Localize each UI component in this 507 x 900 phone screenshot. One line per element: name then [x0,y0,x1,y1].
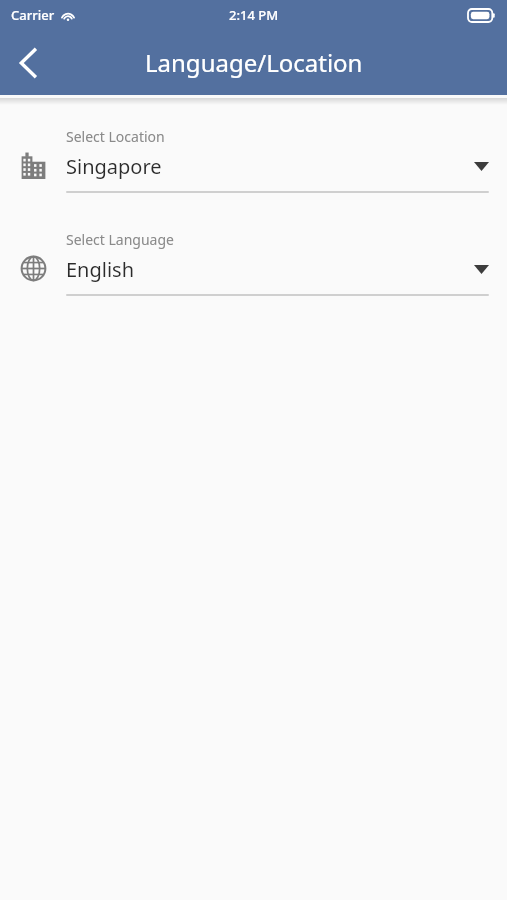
button[interactable]: Language [0,230,507,296]
staticText: Select Language [66,230,174,249]
staticText: Language/Location [145,46,363,79]
staticText: English [66,256,474,283]
staticText: Carrier [11,6,55,24]
staticText: 2:14 PM [229,6,279,24]
button[interactable]: Back [0,35,56,91]
other: Location [0,127,66,191]
other: Language [0,230,66,294]
other: Open Select Language [474,265,489,274]
other: Open Select Location [474,162,489,171]
button[interactable]: Location [0,127,507,193]
staticText: Singapore [66,153,474,180]
staticText: Select Location [66,127,165,146]
